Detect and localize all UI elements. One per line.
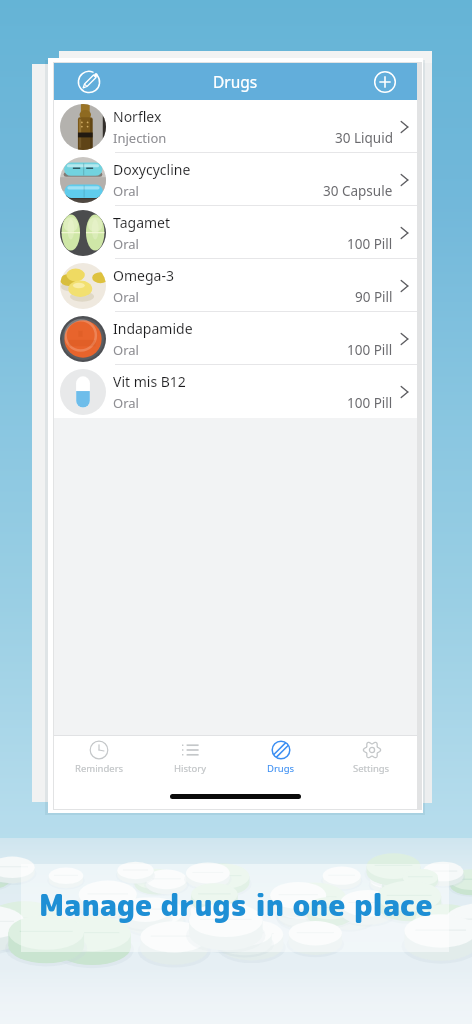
- staticText: 30 Liquid: [335, 129, 393, 147]
- staticText: Indapamide: [113, 319, 193, 338]
- staticText: Injection: [113, 129, 167, 147]
- staticText: 100 Pill: [347, 235, 393, 253]
- button[interactable]: Doxycycline: [54, 153, 417, 206]
- staticText: Manage drugs in one place: [39, 885, 433, 925]
- button[interactable]: Vit mis B12: [54, 365, 417, 418]
- staticText: Oral: [113, 394, 139, 412]
- staticText: 90 Pill: [355, 288, 393, 306]
- button[interactable]: History: [144, 736, 235, 775]
- button[interactable]: Reminders: [54, 736, 144, 775]
- staticText: History: [174, 762, 206, 775]
- staticText: Drugs: [267, 762, 295, 775]
- button[interactable]: Omega-3: [54, 259, 417, 312]
- staticText: Reminders: [75, 762, 124, 775]
- staticText: Tagamet: [113, 213, 171, 232]
- staticText: Oral: [113, 341, 139, 359]
- staticText: 30 Capsule: [323, 182, 393, 200]
- button[interactable]: Norflex: [54, 100, 417, 153]
- button[interactable]: Drugs: [235, 736, 326, 775]
- button[interactable]: Indapamide: [54, 312, 417, 365]
- staticText: Oral: [113, 182, 139, 200]
- staticText: Doxycycline: [113, 160, 191, 179]
- staticText: Omega-3: [113, 266, 174, 285]
- staticText: Oral: [113, 288, 139, 306]
- button[interactable]: Settings: [326, 736, 417, 775]
- staticText: 100 Pill: [347, 341, 393, 359]
- staticText: Drugs: [213, 71, 258, 92]
- button[interactable]: Add: [371, 68, 399, 96]
- staticText: 100 Pill: [347, 394, 393, 412]
- staticText: Norflex: [113, 107, 162, 126]
- button[interactable]: Edit: [75, 68, 103, 96]
- staticText: Oral: [113, 235, 139, 253]
- staticText: Vit mis B12: [113, 372, 186, 391]
- button[interactable]: Tagamet: [54, 206, 417, 259]
- staticText: Settings: [353, 762, 390, 775]
